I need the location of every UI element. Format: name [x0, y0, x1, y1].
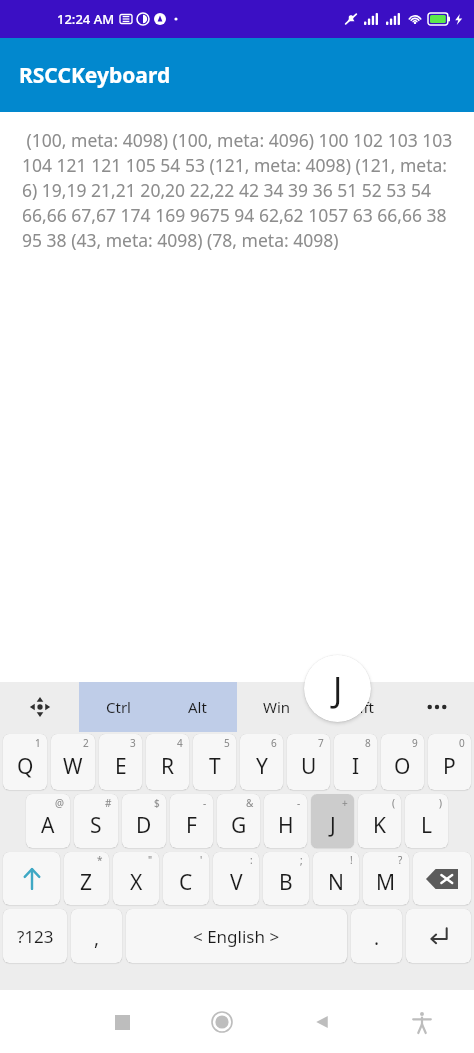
button[interactable]: .	[351, 909, 402, 963]
staticText: G	[231, 811, 247, 840]
button[interactable]: ,	[71, 909, 122, 963]
staticText: "	[148, 853, 153, 867]
staticText: K	[373, 811, 386, 840]
staticText: X	[130, 868, 143, 897]
button[interactable]: Accessibility	[400, 1000, 444, 1044]
button[interactable]: More options	[399, 682, 474, 732]
button[interactable]: Back	[300, 1000, 344, 1044]
staticText: L	[421, 811, 433, 840]
staticText: 7	[318, 736, 324, 750]
button[interactable]: Enter	[406, 909, 471, 963]
staticText: R	[161, 752, 175, 781]
staticText: F	[186, 811, 197, 840]
staticText: 4	[177, 736, 183, 750]
staticText: < English >	[193, 925, 280, 948]
button[interactable]: Shift	[316, 682, 399, 732]
staticText: 5	[224, 736, 230, 750]
button[interactable]: A	[26, 794, 70, 848]
staticText: (100, meta: 4098) (100, meta: 4096) 100 …	[22, 128, 456, 252]
staticText: C	[179, 868, 193, 897]
staticText: D	[136, 811, 152, 840]
button[interactable]: L	[405, 794, 448, 848]
staticText: N	[328, 868, 344, 897]
staticText: )	[439, 796, 442, 810]
button[interactable]: X	[113, 852, 159, 905]
staticText: 0	[459, 736, 465, 750]
staticText: ?	[398, 853, 403, 867]
button[interactable]: D	[122, 794, 166, 848]
staticText: J	[330, 811, 336, 840]
button[interactable]: Q	[3, 734, 47, 790]
staticText: ;	[300, 853, 303, 867]
button[interactable]: G	[217, 794, 260, 848]
staticText: O	[394, 752, 411, 781]
button[interactable]: I	[334, 734, 377, 790]
staticText: 9	[412, 736, 418, 750]
button[interactable]: Shift	[3, 852, 60, 905]
button[interactable]: Alt	[158, 682, 237, 732]
staticText: $	[154, 796, 160, 810]
staticText: 2	[83, 736, 89, 750]
staticText: Ctrl	[106, 697, 131, 717]
button[interactable]: W	[51, 734, 95, 790]
button[interactable]: ?123	[3, 909, 67, 963]
button[interactable]: F	[170, 794, 213, 848]
staticText: @	[55, 796, 64, 810]
staticText: :	[250, 853, 253, 867]
button[interactable]: J	[311, 794, 354, 848]
staticText: Z	[80, 868, 93, 897]
staticText: 12:24 AM	[57, 10, 115, 28]
staticText: W	[63, 752, 83, 781]
button[interactable]: N	[313, 852, 359, 905]
button[interactable]: Z	[64, 852, 109, 905]
staticText: H	[278, 811, 294, 840]
button[interactable]: R	[146, 734, 189, 790]
button[interactable]: B	[263, 852, 309, 905]
staticText: U	[301, 752, 317, 781]
button[interactable]: Recents	[100, 1000, 144, 1044]
button[interactable]: RSCCKeyboard	[0, 38, 474, 112]
staticText: Alt	[188, 697, 207, 717]
button[interactable]: S	[74, 794, 118, 848]
button[interactable]: U	[287, 734, 330, 790]
staticText: V	[230, 868, 243, 897]
staticText: .	[374, 925, 380, 951]
staticText: T	[209, 752, 221, 781]
button[interactable]: Home	[200, 1000, 244, 1044]
staticText: !	[350, 853, 353, 867]
staticText: ,	[94, 925, 100, 951]
staticText: Shift	[342, 697, 374, 717]
staticText: P	[443, 752, 456, 781]
button[interactable]: P	[428, 734, 471, 790]
button[interactable]: M	[363, 852, 409, 905]
button[interactable]: Y	[240, 734, 283, 790]
button[interactable]: V	[213, 852, 259, 905]
staticText: RSCCKeyboard	[19, 61, 171, 90]
button[interactable]: E	[99, 734, 142, 790]
staticText: Win	[263, 697, 291, 717]
button[interactable]: H	[264, 794, 307, 848]
button[interactable]: Move cursor	[0, 682, 79, 732]
button[interactable]: T	[193, 734, 236, 790]
staticText: B	[279, 868, 293, 897]
button[interactable]: < English >	[126, 909, 347, 963]
button[interactable]: K	[358, 794, 401, 848]
staticText: Y	[256, 752, 268, 781]
staticText: #	[105, 796, 112, 810]
button[interactable]: Win	[237, 682, 316, 732]
staticText: M	[376, 868, 396, 897]
staticText: 6	[271, 736, 277, 750]
staticText: (	[392, 796, 395, 810]
staticText: -	[297, 796, 301, 810]
staticText: +	[342, 796, 348, 810]
staticText: 3	[130, 736, 136, 750]
button[interactable]: Backspace	[413, 852, 471, 905]
staticText: E	[115, 752, 127, 781]
staticText: *	[97, 853, 103, 867]
staticText: I	[352, 752, 360, 781]
staticText: &	[246, 796, 254, 810]
button[interactable]: C	[163, 852, 209, 905]
button[interactable]: O	[381, 734, 424, 790]
button[interactable]: Ctrl	[79, 682, 158, 732]
staticText: Q	[17, 752, 34, 781]
